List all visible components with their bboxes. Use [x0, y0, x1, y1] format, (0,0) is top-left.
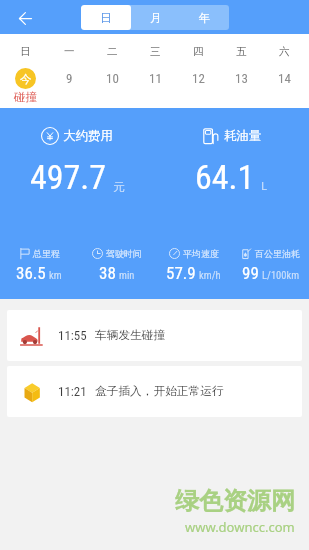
- staticText: www.downcc.com: [185, 518, 295, 536]
- staticText: 日: [100, 11, 112, 25]
- staticText: 总里程: [33, 248, 60, 259]
- staticText: 38: [99, 263, 116, 283]
- staticText: 11:21: [58, 384, 87, 399]
- staticText: 57.9: [166, 263, 196, 283]
- staticText: 二: [107, 45, 118, 58]
- staticText: 百公里油耗: [255, 248, 300, 259]
- staticText: 今: [20, 72, 32, 86]
- staticText: 大约费用: [63, 128, 113, 144]
- button[interactable]: 月: [131, 5, 180, 30]
- button[interactable]: 11: [134, 68, 177, 89]
- staticText: 碰撞: [14, 90, 37, 104]
- staticText: km: [49, 269, 62, 281]
- staticText: 99: [242, 263, 259, 283]
- staticText: 11:55: [58, 328, 87, 343]
- staticText: 13: [235, 71, 248, 86]
- button[interactable]: 9: [47, 68, 91, 89]
- staticText: 盒子插入，开始正常运行: [95, 384, 224, 399]
- staticText: 五: [236, 45, 247, 58]
- staticText: 月: [150, 11, 162, 25]
- button[interactable]: Back: [11, 4, 39, 32]
- button[interactable]: 11:55: [7, 310, 302, 361]
- staticText: 车辆发生碰撞: [95, 328, 166, 343]
- staticText: 绿色资源网: [175, 486, 295, 516]
- staticText: 10: [106, 71, 119, 86]
- staticText: 六: [279, 45, 290, 58]
- staticText: 三: [150, 45, 161, 58]
- button[interactable]: 14: [263, 68, 306, 89]
- staticText: 四: [193, 45, 204, 58]
- staticText: 9: [66, 71, 73, 86]
- staticText: 年: [199, 11, 211, 25]
- staticText: 元: [113, 180, 125, 194]
- button[interactable]: 年: [180, 5, 229, 30]
- staticText: 一: [64, 45, 75, 58]
- staticText: 耗油量: [224, 128, 262, 144]
- button[interactable]: 今: [14, 68, 37, 104]
- staticText: 36.5: [16, 263, 46, 283]
- staticText: L: [261, 178, 268, 194]
- staticText: 11: [149, 71, 162, 86]
- staticText: km/h: [199, 269, 221, 281]
- button[interactable]: 11:21: [7, 366, 302, 417]
- button[interactable]: 13: [220, 68, 263, 89]
- staticText: 12: [192, 71, 205, 86]
- staticText: 驾驶时间: [106, 248, 142, 259]
- staticText: 平均速度: [183, 248, 219, 259]
- staticText: 日: [20, 45, 31, 58]
- staticText: L/100km: [262, 269, 300, 281]
- staticText: 64.1: [195, 157, 255, 197]
- staticText: min: [119, 269, 135, 281]
- button[interactable]: 日: [81, 5, 131, 30]
- staticText: 14: [278, 71, 291, 86]
- button[interactable]: 12: [177, 68, 220, 89]
- button[interactable]: 10: [91, 68, 134, 89]
- staticText: 497.7: [30, 157, 107, 197]
